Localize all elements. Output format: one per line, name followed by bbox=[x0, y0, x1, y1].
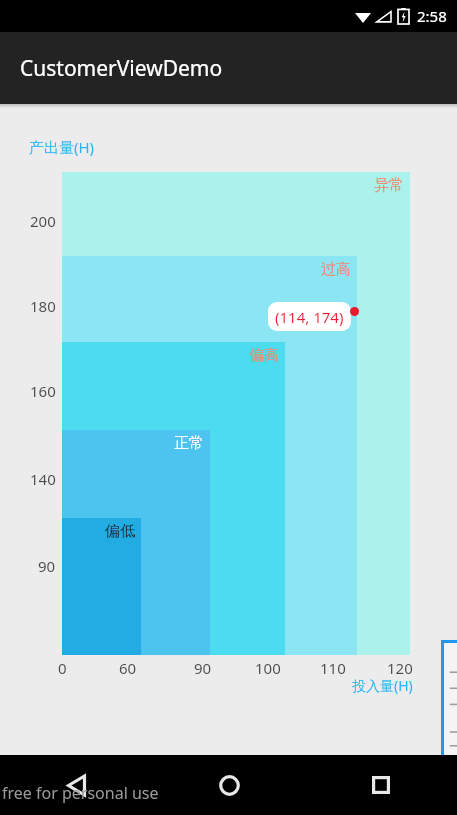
staticText: 0 bbox=[58, 658, 67, 678]
button[interactable]: Recent apps bbox=[305, 755, 457, 815]
staticText: 100 bbox=[255, 658, 281, 678]
staticText: 200 bbox=[30, 211, 56, 231]
button[interactable]: 异常 bbox=[365, 176, 404, 195]
other: Data point 114, 174 bbox=[350, 307, 359, 316]
button[interactable]: 偏低 bbox=[70, 522, 135, 541]
staticText: 160 bbox=[30, 381, 56, 401]
staticText: 90 bbox=[38, 556, 56, 576]
staticText: free for personal use bbox=[2, 782, 159, 804]
staticText: CustomerViewDemo bbox=[20, 54, 223, 83]
staticText: 偏高 bbox=[249, 346, 279, 365]
button[interactable]: 过高 bbox=[293, 260, 351, 279]
button[interactable] bbox=[441, 640, 457, 755]
button[interactable]: Back bbox=[0, 755, 153, 815]
button[interactable]: Home bbox=[153, 755, 305, 815]
staticText: 120 bbox=[387, 658, 413, 678]
staticText: 偏低 bbox=[105, 522, 135, 541]
staticText: 正常 bbox=[174, 434, 204, 453]
button[interactable]: 偏高 bbox=[218, 346, 279, 365]
staticText: 2:58 bbox=[417, 6, 447, 26]
staticText: 60 bbox=[119, 658, 137, 678]
staticText: (114, 174) bbox=[275, 307, 344, 327]
staticText: 180 bbox=[30, 296, 56, 316]
button[interactable]: (114, 174) bbox=[268, 302, 351, 331]
staticText: 异常 bbox=[374, 176, 404, 195]
staticText: 110 bbox=[320, 658, 346, 678]
staticText: 90 bbox=[194, 658, 212, 678]
staticText: 140 bbox=[30, 469, 56, 489]
staticText: 投入量(H) bbox=[352, 676, 413, 695]
button[interactable]: CustomerViewDemo bbox=[0, 32, 457, 104]
staticText: 产出量(H) bbox=[29, 137, 95, 157]
staticText: 过高 bbox=[321, 260, 351, 279]
button[interactable]: 正常 bbox=[149, 434, 204, 453]
